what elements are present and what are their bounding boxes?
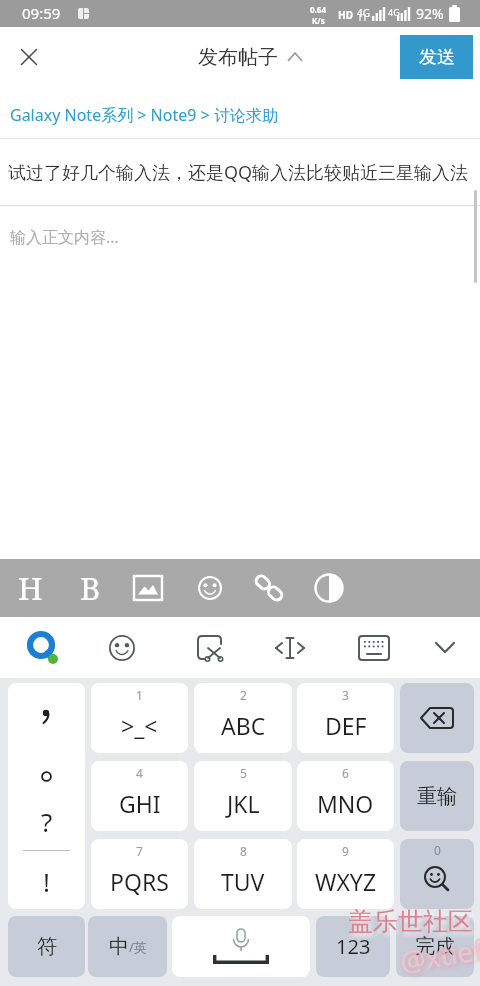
staticText: GHI: [119, 788, 161, 819]
staticText: /英: [129, 938, 147, 956]
button[interactable]: 3: [297, 683, 394, 753]
button[interactable]: [172, 916, 310, 977]
button[interactable]: 中: [88, 916, 167, 977]
button[interactable]: [99, 625, 145, 671]
button[interactable]: [422, 625, 468, 671]
button[interactable]: [120, 559, 176, 617]
button[interactable]: 符: [8, 916, 85, 977]
staticText: 发送: [419, 46, 455, 69]
button[interactable]: 0: [400, 839, 474, 909]
staticText: 输入正文内容...: [10, 226, 119, 248]
staticText: 9: [342, 843, 349, 859]
button[interactable]: 7: [91, 839, 188, 909]
staticText: Galaxy Note系列 > Note9 > 讨论求助: [10, 104, 278, 126]
staticText: 4: [136, 765, 143, 781]
button[interactable]: 1: [91, 683, 188, 753]
button[interactable]: [187, 625, 233, 671]
staticText: 6: [342, 765, 349, 781]
staticText: HD: [338, 8, 353, 22]
staticText: PQRS: [110, 866, 169, 897]
button[interactable]: 发布帖子: [10, 27, 480, 87]
button[interactable]: [12, 40, 46, 74]
staticText: TUV: [221, 866, 265, 897]
staticText: 3: [342, 687, 349, 703]
button[interactable]: [182, 559, 238, 617]
staticText: 试过了好几个输入法，还是QQ输入法比较贴近三星输入法: [8, 160, 469, 185]
staticText: >_<: [121, 710, 158, 741]
button[interactable]: 6: [297, 761, 394, 831]
staticText: 符: [37, 934, 57, 959]
staticText: 中: [109, 934, 129, 959]
staticText: ABC: [221, 710, 266, 741]
button[interactable]: 完成: [396, 916, 474, 977]
staticText: 0: [434, 842, 441, 858]
staticText: 5: [240, 765, 247, 781]
staticText: 4G: [388, 6, 400, 18]
staticText: 完成: [415, 934, 455, 959]
button[interactable]: B: [62, 559, 118, 617]
button[interactable]: 4: [91, 761, 188, 831]
button[interactable]: 2: [194, 683, 292, 753]
staticText: !: [43, 864, 50, 899]
button[interactable]: 123: [316, 916, 390, 977]
staticText: JKL: [227, 788, 260, 819]
staticText: @xtief: [397, 930, 480, 980]
staticText: 盖乐世社区: [348, 906, 473, 937]
button[interactable]: Galaxy Note系列 > Note9 > 讨论求助: [10, 104, 278, 126]
button[interactable]: 重输: [400, 761, 474, 831]
button[interactable]: 5: [194, 761, 292, 831]
button[interactable]: [301, 559, 357, 617]
staticText: 发布帖子: [198, 45, 278, 70]
staticText: 重输: [417, 784, 457, 809]
staticText: 123: [336, 933, 371, 960]
button[interactable]: 9: [297, 839, 394, 909]
button[interactable]: H: [2, 559, 58, 617]
staticText: 92%: [416, 4, 444, 23]
staticText: 09:59: [22, 3, 61, 23]
button[interactable]: [400, 683, 474, 753]
staticText: 0.64: [310, 4, 326, 15]
staticText: K/s: [312, 15, 325, 26]
staticText: 4G: [357, 6, 370, 20]
staticText: 8: [240, 843, 247, 859]
button[interactable]: 8: [194, 839, 292, 909]
button[interactable]: [351, 625, 397, 671]
staticText: DEF: [325, 710, 367, 741]
staticText: WXYZ: [315, 866, 377, 897]
staticText: H: [18, 567, 43, 609]
staticText: 2: [240, 687, 247, 703]
staticText: B: [80, 567, 101, 609]
button[interactable]: [241, 559, 297, 617]
button[interactable]: [267, 625, 313, 671]
staticText: MNO: [317, 788, 374, 819]
staticText: 1: [136, 687, 143, 703]
staticText: 7: [136, 843, 143, 859]
button[interactable]: [20, 625, 66, 671]
button[interactable]: ?: [8, 683, 85, 909]
button[interactable]: 发送: [400, 35, 473, 79]
staticText: ?: [41, 804, 53, 839]
